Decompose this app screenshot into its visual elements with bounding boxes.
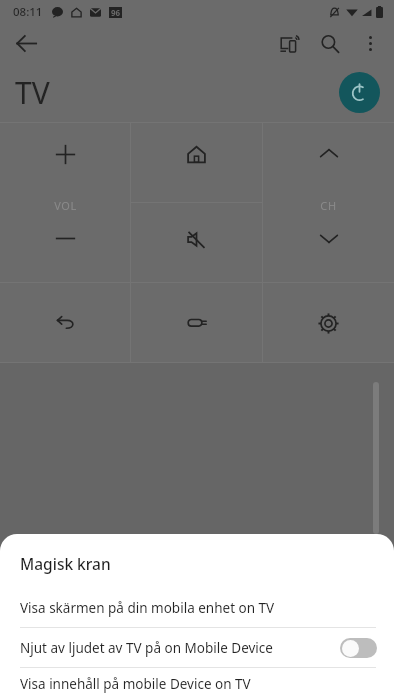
staticText: 08:11: [13, 4, 43, 20]
button[interactable]: Channel up: [263, 122, 394, 202]
button[interactable]: Njut av ljudet av TV på on Mobile Device: [0, 628, 394, 667]
button[interactable]: Settings: [263, 283, 394, 363]
button[interactable]: Toggle TV audio: [340, 638, 377, 658]
staticText: Magisk kran: [20, 553, 111, 574]
button[interactable]: Volume down: [0, 202, 130, 282]
button[interactable]: Mute: [131, 203, 262, 282]
staticText: CH: [320, 198, 337, 213]
staticText: VOL: [54, 198, 77, 213]
staticText: Visa innehåll på mobile Device on TV: [20, 675, 251, 693]
button[interactable]: Visa innehåll på mobile Device on TV: [0, 668, 394, 700]
button[interactable]: Search: [310, 24, 350, 63]
button[interactable]: Channel down: [263, 202, 394, 282]
button[interactable]: Volume up: [0, 122, 130, 202]
staticText: Visa skärmen på din mobila enhet on TV: [20, 599, 275, 617]
staticText: TV: [15, 72, 50, 113]
button[interactable]: Back: [0, 283, 130, 363]
button[interactable]: Home: [131, 122, 262, 202]
button[interactable]: More options: [350, 24, 390, 63]
button[interactable]: Power: [339, 72, 380, 113]
staticText: 96: [111, 7, 121, 18]
staticText: Njut av ljudet av TV på on Mobile Device: [20, 639, 273, 657]
button[interactable]: Source: [131, 283, 262, 363]
button[interactable]: Visa skärmen på din mobila enhet on TV: [0, 588, 394, 627]
button[interactable]: Back: [6, 24, 46, 63]
button[interactable]: Cast to device: [270, 24, 310, 63]
